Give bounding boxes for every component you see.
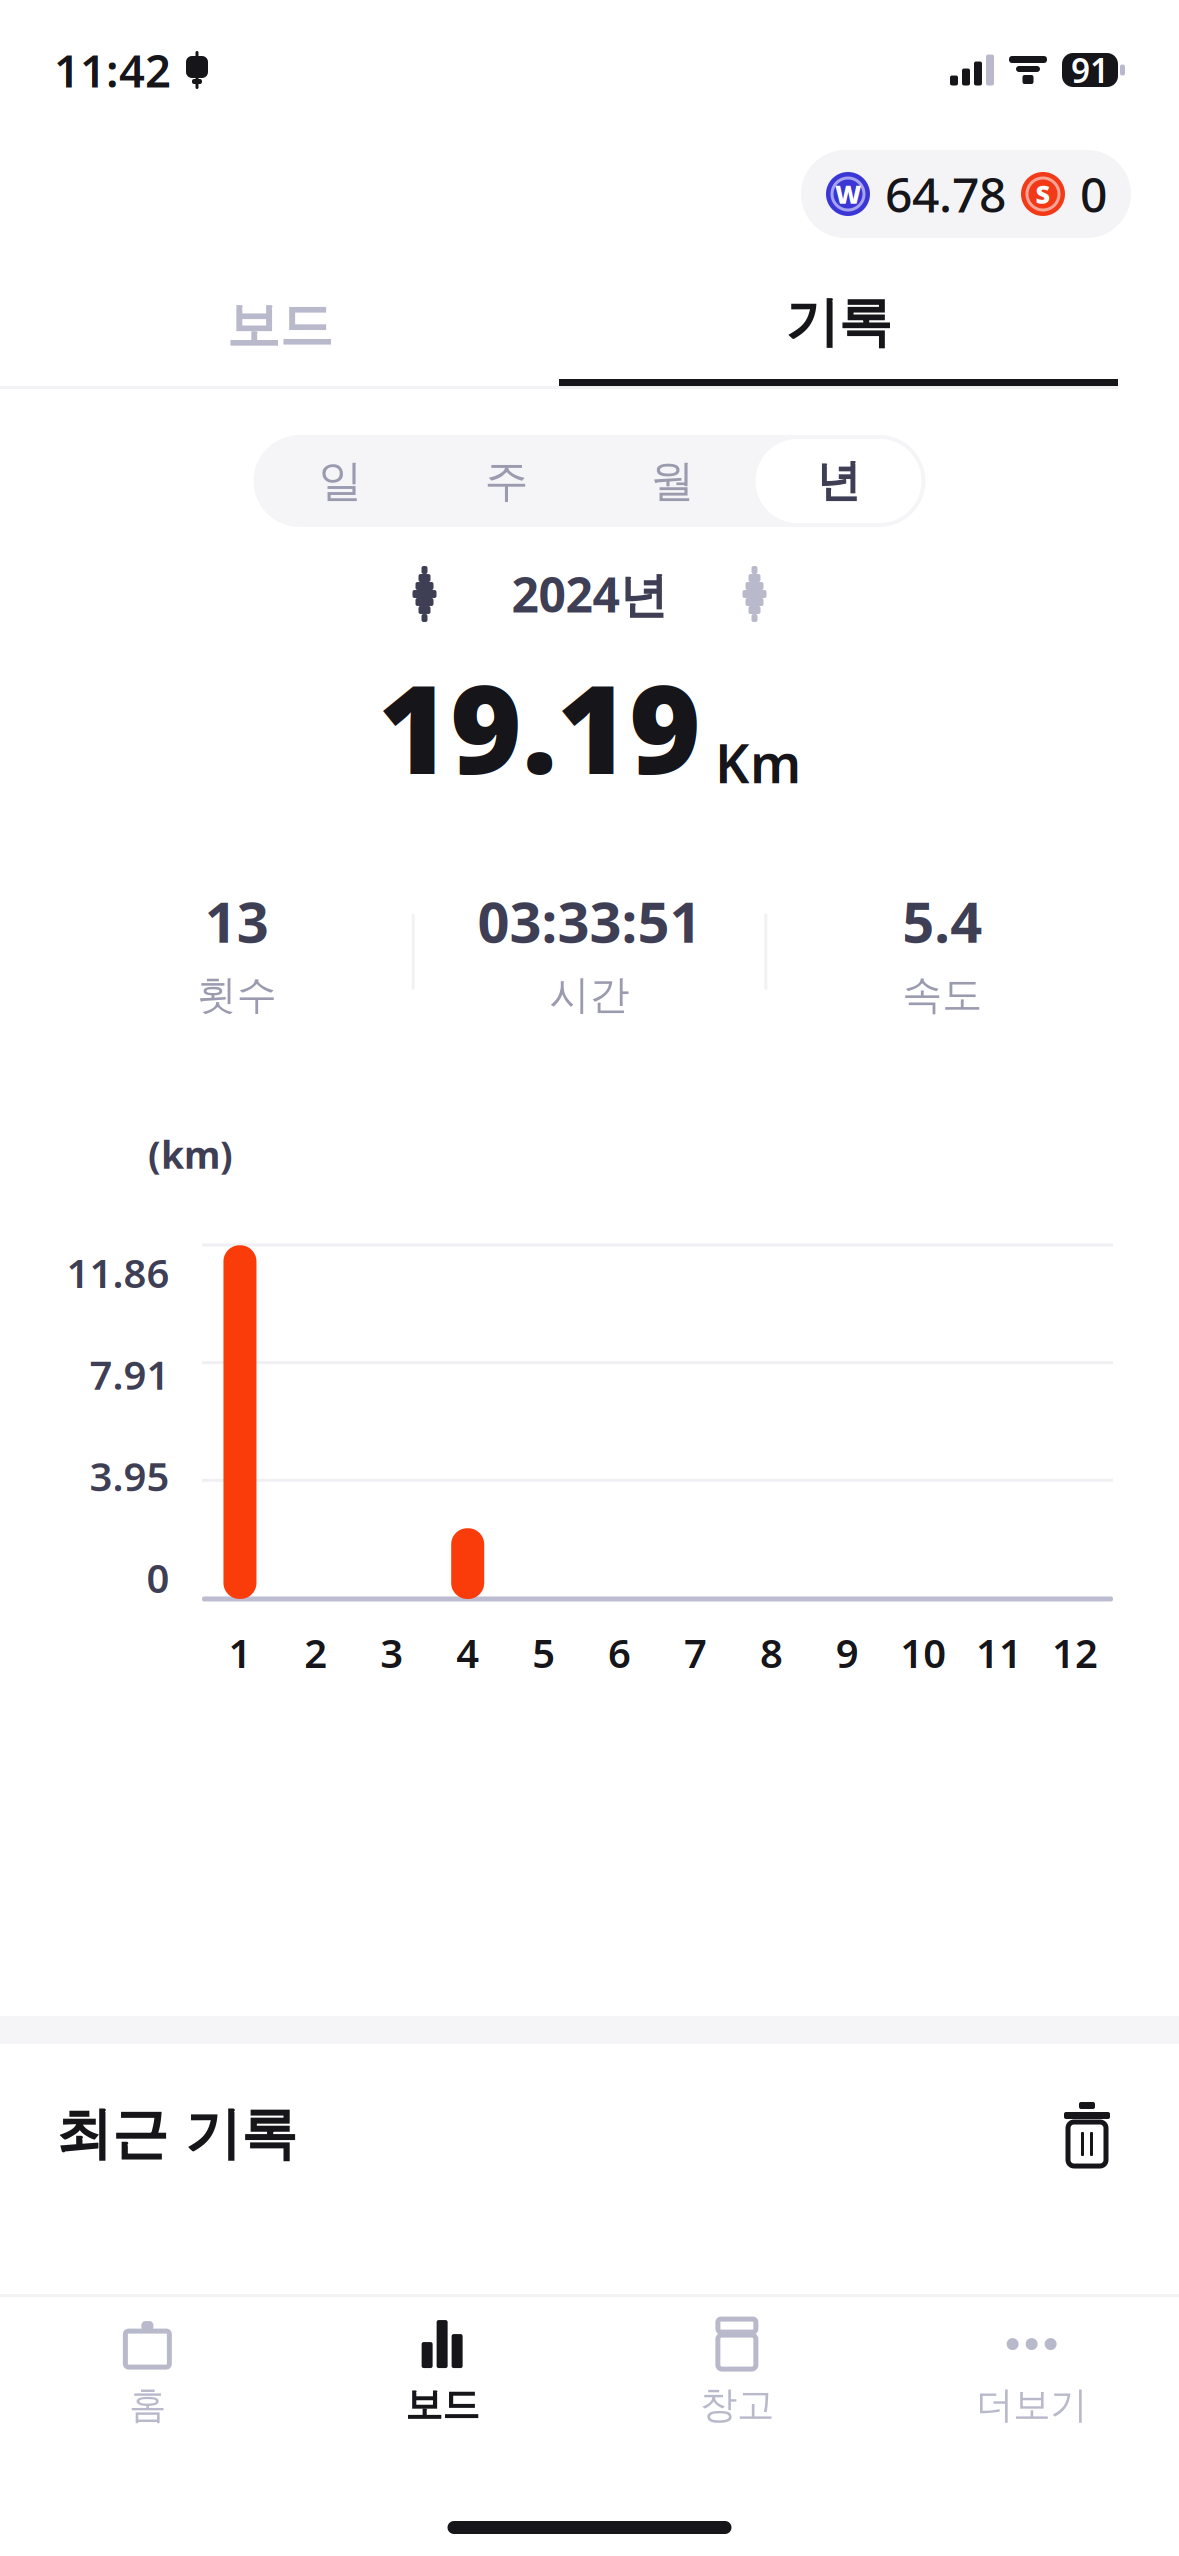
- staticText: 03:33:51: [477, 884, 701, 958]
- staticText: 월: [650, 454, 694, 508]
- staticText: 10: [900, 1626, 946, 1679]
- staticText: 횟수: [197, 970, 277, 1019]
- button[interactable]: W: [801, 150, 1131, 238]
- button[interactable]: 보드: [295, 2300, 590, 2446]
- staticText: S: [1035, 177, 1050, 211]
- staticText: 2024년: [511, 562, 667, 626]
- staticText: 19.19: [378, 645, 701, 808]
- staticText: 3.95: [89, 1449, 169, 1502]
- staticText: 0: [1080, 162, 1107, 226]
- button[interactable]: 홈: [0, 2300, 295, 2446]
- button[interactable]: 다음 해: [719, 559, 789, 629]
- staticText: (km): [148, 1129, 233, 1179]
- button[interactable]: 일: [257, 439, 423, 523]
- staticText: 13: [205, 884, 269, 958]
- button[interactable]: 창고: [589, 2300, 884, 2446]
- staticText: 0: [146, 1551, 169, 1604]
- staticText: 4: [456, 1626, 479, 1679]
- staticText: 91: [1071, 48, 1109, 92]
- button[interactable]: 기록 삭제: [1051, 2098, 1123, 2170]
- staticText: 2: [304, 1626, 327, 1679]
- button[interactable]: 기록: [559, 266, 1118, 386]
- staticText: 시간: [549, 970, 629, 1019]
- staticText: 1: [228, 1626, 251, 1679]
- button[interactable]: 월: [589, 439, 755, 523]
- button[interactable]: 주: [423, 439, 589, 523]
- staticText: 5: [532, 1626, 555, 1679]
- staticText: 64.78: [885, 162, 1006, 226]
- staticText: 기록: [785, 290, 891, 355]
- staticText: 7.91: [89, 1348, 169, 1401]
- staticText: 속도: [902, 970, 982, 1019]
- staticText: 11: [976, 1626, 1022, 1679]
- staticText: 6: [608, 1626, 631, 1679]
- staticText: 일: [318, 454, 362, 508]
- staticText: 11:42: [54, 40, 171, 100]
- staticText: 11.86: [66, 1246, 169, 1299]
- staticText: W: [835, 177, 861, 211]
- staticText: 최근 기록: [56, 2100, 297, 2168]
- staticText: 9: [836, 1626, 859, 1679]
- staticText: 5.4: [902, 884, 982, 958]
- button[interactable]: 더보기: [884, 2300, 1179, 2446]
- button[interactable]: 보드: [0, 266, 559, 386]
- staticText: 주: [484, 454, 528, 508]
- staticText: 보드: [405, 2382, 479, 2428]
- staticText: 홈: [129, 2382, 166, 2428]
- button[interactable]: 년: [755, 439, 921, 523]
- staticText: 보드: [226, 293, 332, 359]
- staticText: 더보기: [976, 2382, 1087, 2428]
- staticText: 3: [380, 1626, 403, 1679]
- staticText: 7: [684, 1626, 707, 1679]
- staticText: Km: [715, 727, 801, 798]
- button[interactable]: 이전 해: [389, 559, 459, 629]
- staticText: 12: [1052, 1626, 1098, 1679]
- staticText: 년: [816, 454, 860, 508]
- staticText: 8: [760, 1626, 783, 1679]
- staticText: 창고: [700, 2382, 774, 2428]
